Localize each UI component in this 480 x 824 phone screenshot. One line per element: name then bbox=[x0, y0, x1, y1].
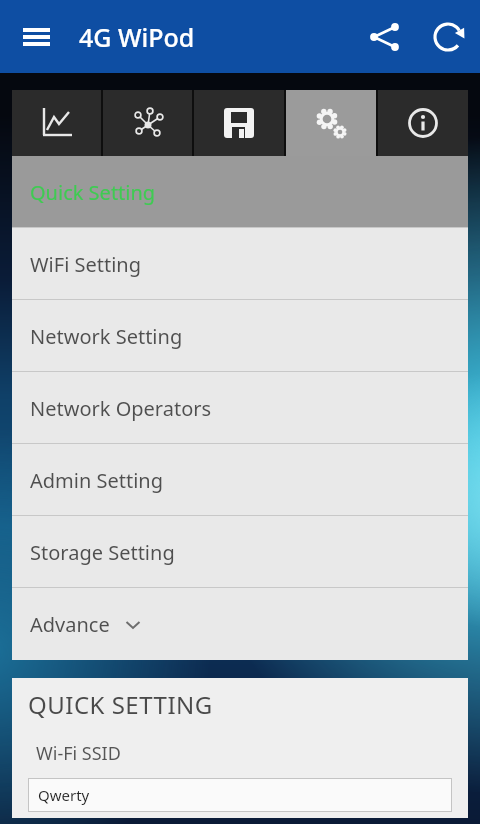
button[interactable]: Network Setting bbox=[12, 300, 468, 372]
staticText: Admin Setting bbox=[30, 467, 164, 494]
button[interactable] bbox=[194, 90, 284, 156]
button[interactable] bbox=[12, 90, 101, 156]
button[interactable] bbox=[286, 90, 376, 156]
button[interactable] bbox=[103, 90, 192, 156]
button[interactable]: Storage Setting bbox=[12, 516, 468, 588]
button[interactable] bbox=[361, 13, 409, 61]
button[interactable] bbox=[378, 90, 468, 156]
button[interactable]: WiFi Setting bbox=[12, 228, 468, 300]
button[interactable]: Advance bbox=[12, 588, 468, 660]
staticText: Storage Setting bbox=[30, 539, 175, 566]
staticText: Advance bbox=[30, 611, 110, 638]
staticText: QUICK SETTING bbox=[28, 688, 213, 721]
button[interactable]: Qwerty bbox=[28, 778, 452, 812]
staticText: 4G WiPod bbox=[79, 20, 195, 54]
staticText: Network Setting bbox=[30, 323, 183, 350]
staticText: Qwerty bbox=[38, 785, 90, 805]
button[interactable]: Network Operators bbox=[12, 372, 468, 444]
staticText: WiFi Setting bbox=[30, 251, 142, 278]
button[interactable]: Admin Setting bbox=[12, 444, 468, 516]
staticText: Network Operators bbox=[30, 395, 212, 422]
button[interactable] bbox=[12, 13, 60, 61]
button[interactable]: Quick Setting bbox=[12, 156, 468, 228]
staticText: Quick Setting bbox=[30, 179, 156, 206]
staticText: Wi-Fi SSID bbox=[36, 741, 121, 766]
button[interactable] bbox=[424, 13, 472, 61]
